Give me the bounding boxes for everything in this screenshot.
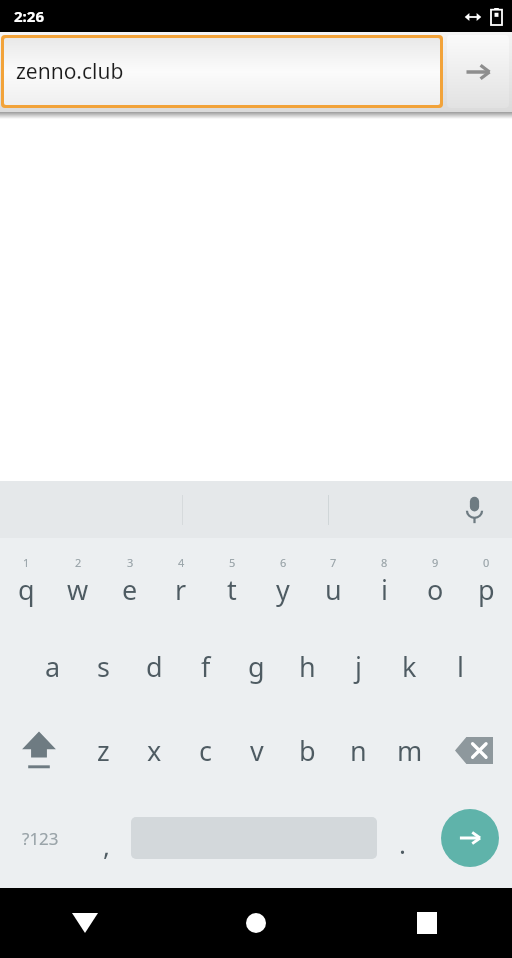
button[interactable]: c [180,708,231,792]
button[interactable]: 7 [308,538,359,624]
staticText: f [201,648,211,685]
button[interactable]: Go [447,35,509,108]
button[interactable]: 8 [359,538,410,624]
staticText: q [18,571,35,608]
button[interactable]: 1 [0,538,52,624]
staticText: 7 [330,555,337,570]
staticText: 2 [75,555,82,570]
staticText: . [399,826,406,861]
staticText: 0 [483,555,490,570]
button[interactable]: . [377,792,427,884]
button[interactable]: 9 [410,538,461,624]
button[interactable]: k [384,624,435,708]
staticText: z [97,732,110,769]
staticText: t [227,571,237,608]
staticText: c [199,732,212,769]
button[interactable]: 0 [461,538,512,624]
staticText: j [355,648,362,685]
staticText: 8 [381,555,388,570]
button[interactable]: x [129,708,180,792]
staticText: y [276,571,290,608]
staticText: v [250,732,264,769]
staticText: 5 [229,555,236,570]
staticText: ?123 [22,827,59,850]
staticText: w [67,571,89,608]
staticText: u [325,571,342,608]
staticText: 1 [23,555,30,570]
button[interactable]: f [180,624,231,708]
button[interactable]: ?123 [0,792,81,884]
staticText: k [402,648,417,685]
button[interactable]: Voice input [452,488,496,532]
staticText: p [478,571,495,608]
staticText: , [103,828,110,863]
button[interactable]: 3 [104,538,155,624]
button[interactable]: 5 [206,538,257,624]
staticText: d [146,648,163,685]
button[interactable]: z [78,708,129,792]
staticText: g [248,648,265,685]
staticText: m [397,732,423,769]
staticText: r [175,571,187,608]
button[interactable]: Home [170,888,341,958]
button[interactable]: 2 [52,538,104,624]
staticText: s [97,648,110,685]
staticText: zenno.club [16,57,124,86]
staticText: e [122,571,138,608]
staticText: 9 [432,555,439,570]
button[interactable]: n [333,708,384,792]
button[interactable]: Go [441,809,499,867]
button[interactable]: v [231,708,282,792]
button[interactable]: j [333,624,384,708]
button[interactable]: Shift [0,708,78,792]
button[interactable]: zenno.club [4,38,440,105]
button[interactable]: d [129,624,180,708]
button[interactable]: Hide keyboard [0,888,170,958]
staticText: i [381,571,388,608]
staticText: b [299,732,316,769]
staticText: x [147,732,162,769]
button[interactable]: 6 [257,538,308,624]
button[interactable]: m [384,708,435,792]
button[interactable]: Backspace [435,708,512,792]
staticText: 4 [178,555,185,570]
button[interactable]: a [27,624,78,708]
button[interactable]: 4 [155,538,206,624]
button[interactable]: b [282,708,333,792]
staticText: n [350,732,367,769]
staticText: 6 [280,555,287,570]
staticText: a [45,648,61,685]
staticText: h [299,648,316,685]
staticText: l [457,648,464,685]
button[interactable]: l [435,624,486,708]
button[interactable]: h [282,624,333,708]
button[interactable]: g [231,624,282,708]
staticText: 2:26 [14,6,44,26]
button[interactable]: , [81,792,131,884]
button[interactable]: s [78,624,129,708]
staticText: 3 [127,555,134,570]
staticText: o [427,571,444,608]
button[interactable]: Recents [341,888,512,958]
